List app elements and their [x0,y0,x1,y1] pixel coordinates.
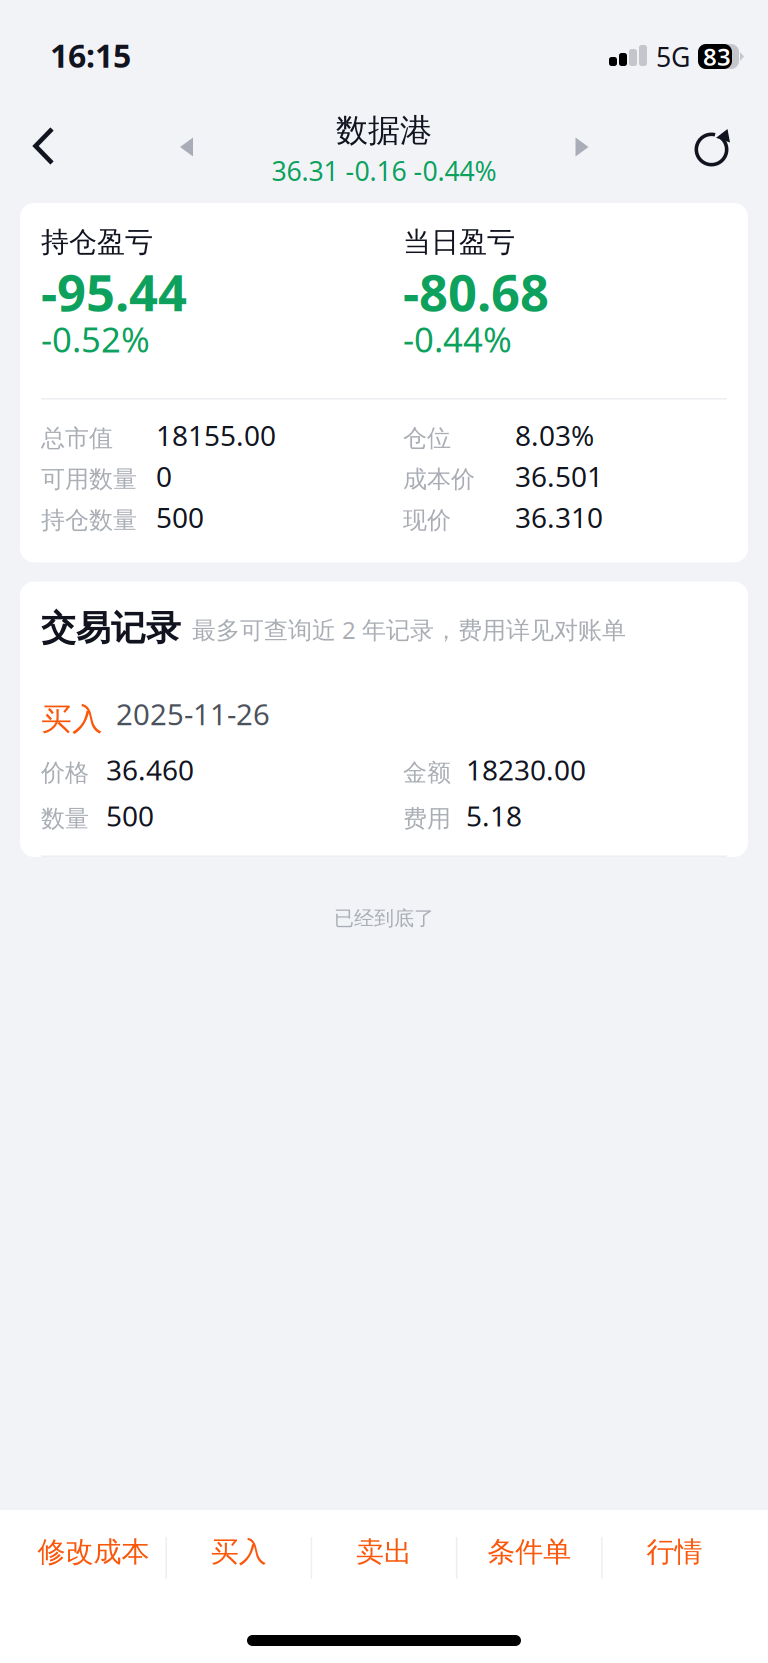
staticText: 现价 [403,505,451,535]
staticText: 最多可查询近 2 年记录，费用详见对账单 [192,614,626,645]
staticText: 500 [156,498,204,536]
button[interactable]: Back [12,114,76,178]
staticText: 持仓盈亏 [41,225,153,259]
button[interactable]: Previous stock [160,121,212,173]
staticText: 8.03% [515,416,594,454]
staticText: -95.44 [41,258,187,325]
staticText: 当日盈亏 [403,225,515,259]
staticText: 5G [656,39,690,74]
staticText: 可用数量 [41,464,137,494]
staticText: 行情 [646,1535,702,1569]
button[interactable]: 修改成本 [21,1504,166,1612]
button[interactable]: 条件单 [457,1504,602,1612]
staticText: 成本价 [403,464,475,494]
staticText: 总市值 [41,423,113,453]
staticText: 卖出 [356,1535,412,1569]
staticText: 2025-11-26 [116,694,270,733]
staticText: 买入 [41,700,103,738]
button[interactable]: 买入 [166,1504,311,1612]
staticText: 条件单 [487,1535,571,1569]
staticText: 金额 [403,758,451,787]
staticText: 仓位 [403,423,451,453]
staticText: 已经到底了 [334,906,434,931]
staticText: 0 [156,457,172,495]
staticText: 500 [106,797,154,834]
staticText: 修改成本 [38,1535,150,1569]
staticText: 数量 [41,804,89,833]
staticText: 5.18 [466,797,522,834]
staticText: 买入 [211,1535,267,1569]
staticText: 价格 [41,758,89,787]
staticText: 83 [703,41,731,72]
staticText: 36.31 -0.16 -0.44% [271,153,496,188]
button[interactable]: Refresh [680,116,744,180]
staticText: 36.501 [515,457,603,495]
staticText: -80.68 [403,258,549,325]
staticText: 18230.00 [466,751,586,788]
button[interactable]: 行情 [602,1504,747,1612]
staticText: 36.460 [106,751,194,788]
staticText: -0.52% [41,316,150,362]
staticText: 16:15 [50,34,131,76]
staticText: -0.44% [403,316,512,362]
staticText: 持仓数量 [41,505,137,535]
staticText: 数据港 [336,111,432,150]
staticText: 36.310 [515,498,603,536]
button[interactable]: 卖出 [311,1504,457,1612]
staticText: 18155.00 [156,416,276,454]
staticText: 费用 [403,804,451,833]
button[interactable]: Next stock [556,121,608,173]
staticText: 交易记录 [41,607,181,649]
